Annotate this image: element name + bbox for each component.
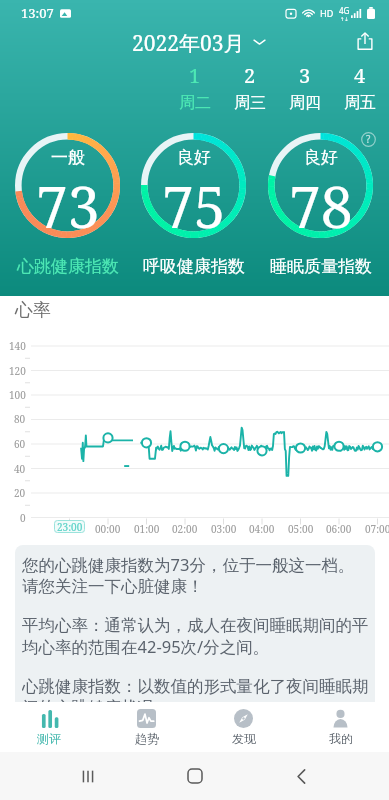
- button[interactable]: 3: [277, 62, 332, 113]
- staticText: 0: [20, 511, 26, 525]
- staticText: 心跳健康指数: [17, 256, 119, 277]
- staticText: 23:00: [57, 520, 83, 533]
- staticText: 75: [162, 167, 226, 245]
- button[interactable]: Back: [283, 758, 319, 794]
- staticText: 心率: [15, 299, 51, 322]
- staticText: 60: [14, 437, 26, 451]
- staticText: 20: [14, 486, 26, 500]
- staticText: 周二: [179, 93, 211, 113]
- staticText: 睡眠质量指数: [270, 256, 372, 277]
- button[interactable]: 呼吸健康指数: [134, 256, 254, 277]
- staticText: 周四: [289, 93, 321, 113]
- staticText: 良好: [177, 147, 211, 168]
- staticText: 周三: [234, 93, 266, 113]
- button[interactable]: 4: [332, 62, 387, 113]
- staticText: 您的心跳健康指数为73分，位于一般这一档。请您关注一下心脏健康！: [22, 553, 369, 597]
- staticText: ?: [366, 132, 371, 146]
- staticText: 周五: [344, 93, 376, 113]
- staticText: 2: [244, 62, 256, 89]
- button[interactable]: 2022年03月: [124, 26, 274, 56]
- staticText: 01:00: [134, 522, 160, 536]
- button[interactable]: 一般: [15, 133, 120, 238]
- staticText: 趋势: [135, 731, 159, 746]
- staticText: 一般: [51, 147, 85, 168]
- staticText: 呼吸健康指数: [143, 256, 245, 277]
- staticText: 00:00: [95, 522, 121, 536]
- button[interactable]: Share: [349, 26, 381, 56]
- staticText: 100: [9, 388, 26, 402]
- staticText: 3: [299, 62, 311, 89]
- staticText: 04:00: [249, 522, 275, 536]
- staticText: 测评: [37, 731, 61, 746]
- staticText: ↑↓: [340, 16, 349, 22]
- staticText: 良好: [304, 147, 338, 168]
- button[interactable]: 1: [167, 62, 222, 113]
- staticText: 120: [9, 364, 26, 378]
- button[interactable]: 趋势: [98, 706, 195, 749]
- button[interactable]: 我的: [292, 706, 389, 749]
- staticText: 4G: [339, 5, 350, 16]
- staticText: 03:00: [211, 522, 237, 536]
- staticText: 平均心率：通常认为，成人在夜间睡眠期间的平均心率的范围在42-95次/分之间。: [22, 615, 369, 658]
- staticText: 我的: [329, 731, 353, 746]
- staticText: 13:07: [21, 4, 54, 22]
- staticText: 05:00: [288, 522, 314, 536]
- staticText: 02:00: [172, 522, 198, 536]
- button[interactable]: 睡眠质量指数: [261, 256, 381, 277]
- staticText: 73: [36, 167, 100, 245]
- staticText: 40: [14, 462, 26, 476]
- staticText: 80: [14, 412, 26, 426]
- staticText: 2022年03月: [132, 29, 245, 53]
- staticText: HD: [320, 7, 334, 19]
- staticText: 心跳健康指数：以数值的形式量化了夜间睡眠期间的心跳健康状况。: [22, 676, 369, 705]
- button[interactable]: 心跳健康指数: [8, 256, 128, 277]
- staticText: 140: [9, 339, 26, 353]
- button[interactable]: Recents: [70, 758, 106, 794]
- staticText: 07:00: [365, 522, 389, 536]
- button[interactable]: 发现: [195, 706, 292, 749]
- staticText: 78: [289, 167, 353, 245]
- staticText: 06:00: [326, 522, 352, 536]
- button[interactable]: 测评: [0, 706, 98, 749]
- staticText: 发现: [232, 731, 256, 746]
- button[interactable]: 良好: [141, 133, 246, 238]
- staticText: 4: [354, 62, 366, 89]
- button[interactable]: Home: [177, 758, 213, 794]
- button[interactable]: 良好: [268, 133, 373, 238]
- button[interactable]: 2: [222, 62, 277, 113]
- staticText: 1: [189, 62, 201, 89]
- button[interactable]: Help: [357, 128, 379, 150]
